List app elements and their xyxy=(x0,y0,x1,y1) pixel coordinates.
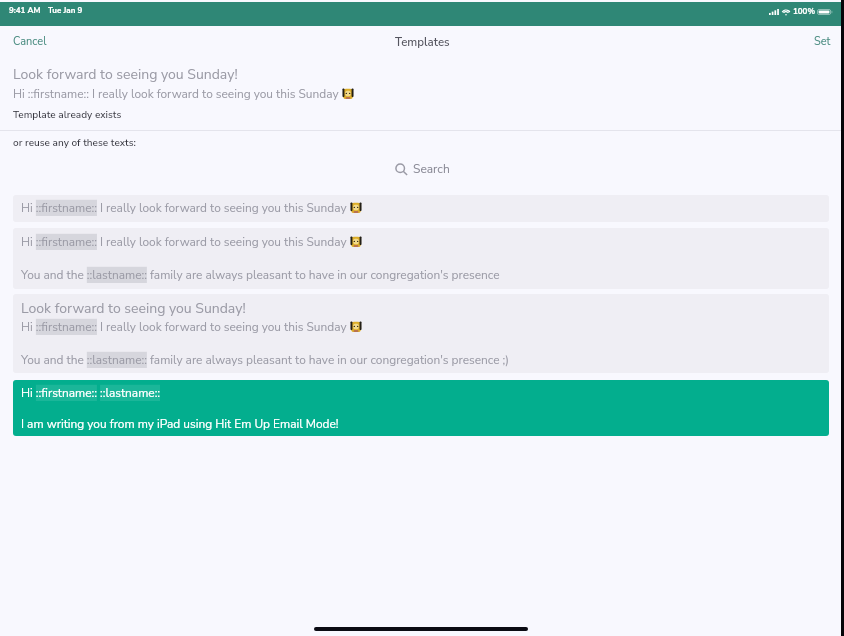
staticText: Set xyxy=(814,34,831,49)
button[interactable]: Set xyxy=(802,28,844,55)
button[interactable]: Hi ::firstname:: I really look forward t… xyxy=(13,228,829,289)
button[interactable]: Hi ::firstname:: I really look forward t… xyxy=(13,195,829,222)
button[interactable]: Search xyxy=(395,161,450,177)
staticText: You and the ::lastname:: family are alwa… xyxy=(21,267,500,283)
staticText: Cancel xyxy=(13,34,47,49)
staticText: Hi ::firstname:: I really look forward t… xyxy=(13,86,342,102)
staticText: Look forward to seeing you Sunday! xyxy=(21,299,246,318)
staticText: 9:41 AM xyxy=(9,5,41,16)
button[interactable]: Cancel xyxy=(0,28,59,55)
staticText: Template already exists xyxy=(13,108,122,122)
staticText: I am writing you from my iPad using Hit … xyxy=(21,416,339,432)
staticText: Look forward to seeing you Sunday! xyxy=(13,65,238,84)
staticText: Hi ::firstname:: I really look forward t… xyxy=(21,319,350,335)
staticText: Hi ::firstname:: I really look forward t… xyxy=(21,234,350,250)
staticText: Templates xyxy=(395,34,450,50)
staticText: Hi ::firstname:: I really look forward t… xyxy=(21,200,350,216)
staticText: Tue Jan 9 xyxy=(48,5,83,16)
button[interactable]: Hi ::firstname:: ::lastname:: xyxy=(13,380,829,436)
staticText: 100% xyxy=(793,6,815,17)
staticText: or reuse any of these texts: xyxy=(13,136,136,150)
staticText: Search xyxy=(413,161,450,177)
button[interactable]: Look forward to seeing you Sunday! xyxy=(13,294,829,373)
staticText: You and the ::lastname:: family are alwa… xyxy=(21,352,510,368)
staticText: Hi ::firstname:: ::lastname:: xyxy=(21,385,161,401)
